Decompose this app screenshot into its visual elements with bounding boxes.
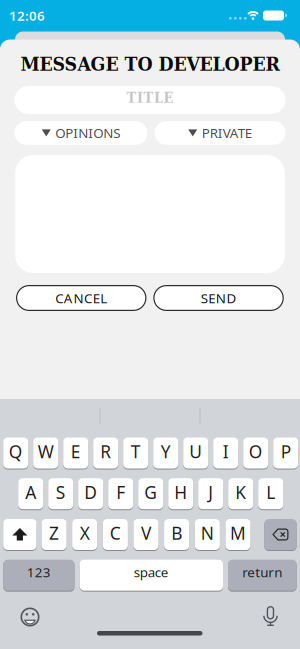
staticText: P — [281, 440, 291, 463]
button[interactable]: Z — [41, 518, 67, 550]
staticText: TITLE — [126, 89, 173, 106]
button[interactable]: P — [273, 437, 298, 469]
button[interactable]: Shift — [3, 518, 36, 550]
button[interactable]: J — [198, 478, 223, 510]
staticText: R — [100, 440, 111, 463]
button[interactable]: Y — [153, 437, 178, 469]
button[interactable]: 123 — [3, 559, 74, 591]
button[interactable]: X — [72, 518, 97, 550]
staticText: U — [189, 440, 202, 463]
staticText: 12:06 — [9, 7, 45, 24]
button[interactable]: F — [108, 478, 133, 510]
staticText: X — [80, 521, 90, 544]
staticText: SEND — [201, 289, 236, 307]
staticText: CANCEL — [55, 289, 107, 307]
staticText: G — [144, 481, 157, 504]
button[interactable]: W — [33, 437, 58, 469]
staticText: space — [134, 563, 169, 581]
button[interactable]: Dictation — [262, 606, 279, 626]
staticText: Y — [161, 440, 171, 463]
button[interactable]: space — [80, 559, 223, 591]
button[interactable]: K — [228, 478, 253, 510]
button[interactable]: V — [133, 518, 158, 550]
staticText: K — [235, 481, 246, 504]
staticText: L — [266, 481, 275, 504]
button[interactable]: B — [164, 518, 189, 550]
button[interactable]: S — [48, 478, 73, 510]
staticText: S — [56, 481, 66, 504]
button[interactable]: return — [228, 559, 297, 591]
staticText: I — [223, 440, 229, 463]
button[interactable]: L — [258, 478, 283, 510]
button[interactable]: CANCEL — [16, 285, 146, 311]
button[interactable]: OPINIONS — [14, 121, 147, 145]
staticText: 123 — [27, 563, 51, 581]
button[interactable]: A — [18, 478, 43, 510]
staticText: Q — [9, 440, 23, 463]
staticText: W — [38, 440, 54, 463]
staticText: C — [110, 521, 121, 544]
button[interactable]: TITLE — [14, 86, 285, 114]
staticText: return — [242, 563, 282, 581]
staticText: Z — [49, 521, 59, 544]
staticText: T — [131, 440, 141, 463]
staticText: H — [174, 481, 187, 504]
staticText: B — [171, 521, 182, 544]
button[interactable]: T — [123, 437, 148, 469]
staticText: M — [230, 521, 246, 544]
button[interactable]: H — [168, 478, 193, 510]
staticText: D — [84, 481, 97, 504]
button[interactable]: D — [78, 478, 103, 510]
button[interactable]: N — [195, 518, 220, 550]
staticText: O — [249, 440, 263, 463]
button[interactable]: C — [103, 518, 128, 550]
button[interactable]: O — [243, 437, 268, 469]
button[interactable]: U — [183, 437, 208, 469]
staticText: MESSAGE TO DEVELOPER — [20, 53, 279, 75]
button[interactable]: M — [225, 518, 250, 550]
button[interactable]: R — [93, 437, 118, 469]
button[interactable]: Delete — [264, 518, 297, 550]
staticText: N — [201, 521, 214, 544]
button[interactable]: I — [213, 437, 238, 469]
button[interactable]: Q — [3, 437, 28, 469]
button[interactable]: PRIVATE — [154, 121, 285, 145]
button[interactable]: G — [138, 478, 163, 510]
button[interactable]: E — [63, 437, 88, 469]
staticText: A — [25, 481, 36, 504]
staticText: OPINIONS — [55, 124, 120, 142]
staticText: PRIVATE — [202, 124, 252, 142]
button[interactable]: SEND — [153, 285, 284, 311]
staticText: V — [141, 521, 151, 544]
staticText: J — [208, 481, 213, 504]
staticText: E — [71, 440, 81, 463]
button[interactable]: Emoji — [20, 607, 40, 627]
staticText: F — [116, 481, 125, 504]
